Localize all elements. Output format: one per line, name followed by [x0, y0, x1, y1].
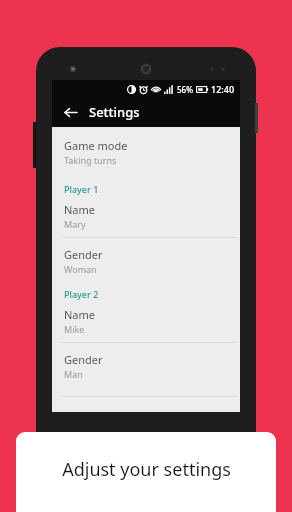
- staticText: Player 1: [64, 183, 99, 195]
- staticText: Player 2: [64, 288, 99, 300]
- button[interactable]: Name: [52, 303, 240, 342]
- staticText: Gender: [64, 247, 103, 262]
- staticText: Settings: [89, 103, 140, 121]
- button[interactable]: Gender: [52, 238, 240, 282]
- staticText: Gender: [64, 352, 103, 367]
- staticText: Woman: [64, 263, 97, 275]
- staticText: Mike: [64, 323, 85, 335]
- button[interactable]: Game mode: [52, 127, 240, 173]
- staticText: Mary: [64, 218, 86, 230]
- staticText: 12:40: [211, 83, 235, 95]
- button[interactable]: Adjust your settings: [16, 432, 276, 512]
- button[interactable]: Name: [52, 198, 240, 237]
- staticText: Name: [64, 202, 96, 217]
- button[interactable]: Back: [57, 99, 83, 125]
- staticText: Name: [64, 307, 96, 322]
- staticText: Taking turns: [64, 154, 117, 166]
- staticText: 56%: [177, 84, 193, 95]
- staticText: Game mode: [64, 138, 128, 153]
- button[interactable]: Gender: [52, 343, 240, 387]
- staticText: Adjust your settings: [62, 457, 231, 482]
- staticText: Man: [64, 368, 83, 380]
